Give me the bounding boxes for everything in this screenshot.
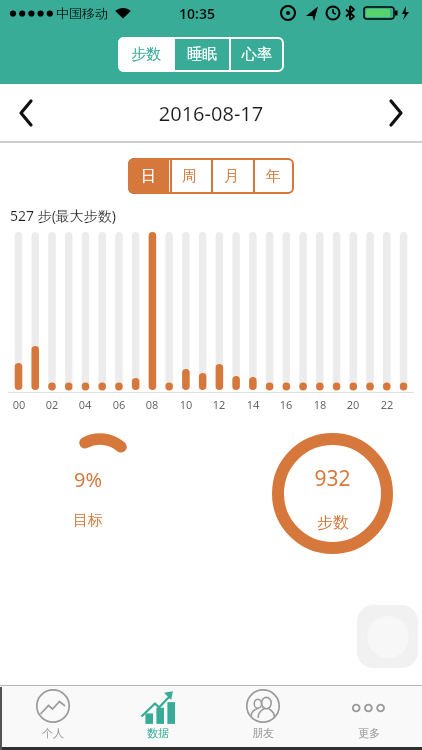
button[interactable]: 更多 [316,686,422,750]
staticText: 朋友 [252,726,274,740]
button[interactable]: 心率 [229,37,284,72]
button[interactable]: 周 [169,158,210,194]
button[interactable]: 月 [210,158,252,194]
staticText: 9% [63,466,113,493]
button[interactable] [384,98,408,128]
staticText: 18 [310,397,330,412]
button[interactable]: 日 [128,158,169,194]
staticText: 06 [109,397,129,412]
staticText: 14 [243,397,263,412]
staticText: 睡眠 [187,45,217,64]
staticText: 步数 [303,513,363,533]
staticText: 20 [343,397,363,412]
staticText: 02 [42,397,62,412]
staticText: 个人 [42,726,64,740]
staticText: 日 [141,167,156,186]
staticText: 16 [276,397,296,412]
staticText: 周 [182,167,197,186]
staticText: 目标 [58,511,118,530]
button[interactable]: 数据 [105,686,210,750]
staticText: 527 步(最大步数) [10,206,117,225]
staticText: 04 [75,397,95,412]
staticText: 心率 [242,45,272,64]
staticText: 08 [142,397,162,412]
staticText: 月 [224,167,239,186]
staticText: 数据 [147,726,169,740]
button[interactable] [14,98,38,128]
staticText: 年 [266,167,281,186]
staticText: 10 [176,397,196,412]
button[interactable]: 朋友 [210,686,316,750]
button[interactable]: 个人 [0,686,105,750]
staticText: 22 [377,397,397,412]
staticText: 中国移动 [56,5,108,21]
button[interactable]: 睡眠 [174,37,229,72]
staticText: 00 [9,397,29,412]
staticText: 更多 [358,726,380,740]
button[interactable] [357,605,418,668]
staticText: 10:35 [173,4,221,23]
staticText: 12 [209,397,229,412]
staticText: 932 [302,464,363,493]
button[interactable]: 步数 [118,37,174,72]
button[interactable]: 年 [252,158,294,194]
staticText: 步数 [131,45,161,64]
staticText: 2016-08-17 [131,100,291,127]
